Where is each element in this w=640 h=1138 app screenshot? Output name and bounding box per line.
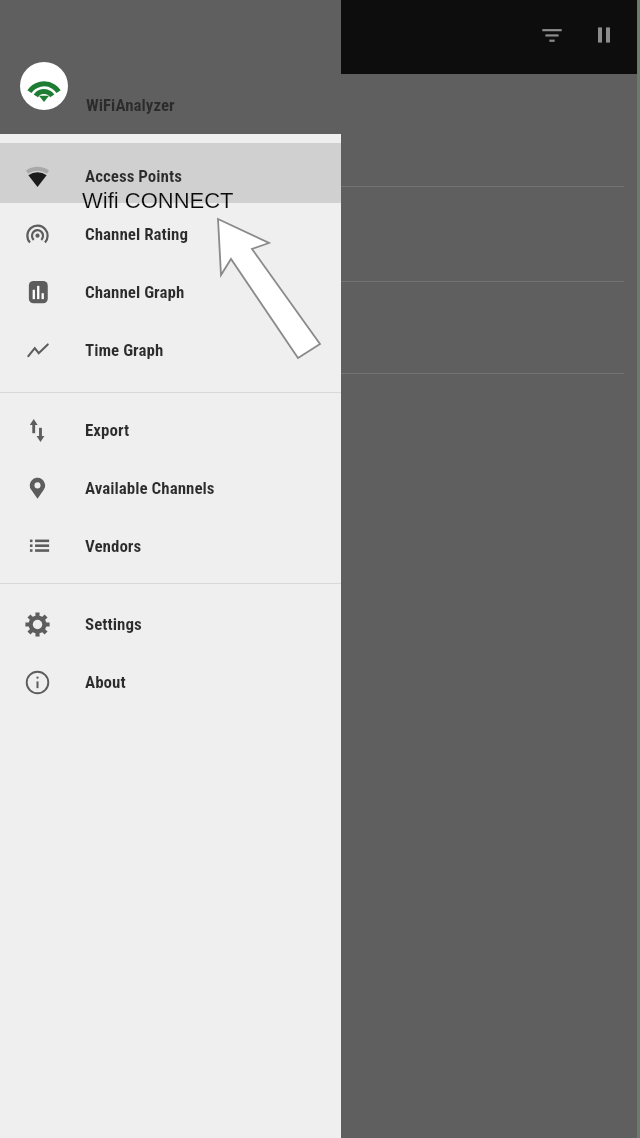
staticText: Access Points bbox=[85, 166, 182, 186]
staticText: Channel Rating bbox=[85, 224, 188, 244]
staticText: Settings bbox=[85, 614, 142, 634]
button[interactable]: Channel Graph bbox=[0, 263, 341, 321]
button[interactable]: Filter bbox=[529, 12, 575, 58]
staticText: Export bbox=[85, 420, 130, 440]
button[interactable]: Settings bbox=[0, 595, 341, 653]
button[interactable]: Available Channels bbox=[0, 459, 341, 517]
staticText: Time Graph bbox=[85, 340, 164, 360]
button[interactable]: Access Points bbox=[0, 143, 341, 203]
staticText: WiFiAnalyzer bbox=[86, 95, 175, 115]
button[interactable]: WiFiAnalyzer bbox=[0, 0, 341, 134]
staticText: Available Channels bbox=[85, 478, 215, 498]
button[interactable]: About bbox=[0, 653, 341, 711]
button[interactable]: Export bbox=[0, 401, 341, 459]
staticText: Channel Graph bbox=[85, 282, 185, 302]
button[interactable]: Channel Rating bbox=[0, 205, 341, 263]
button[interactable]: Pause bbox=[581, 12, 627, 58]
staticText: Wifi CONNECT bbox=[82, 188, 234, 213]
button[interactable]: Time Graph bbox=[0, 321, 341, 379]
button[interactable]: Vendors bbox=[0, 517, 341, 575]
staticText: About bbox=[85, 672, 126, 692]
staticText: Vendors bbox=[85, 536, 142, 556]
